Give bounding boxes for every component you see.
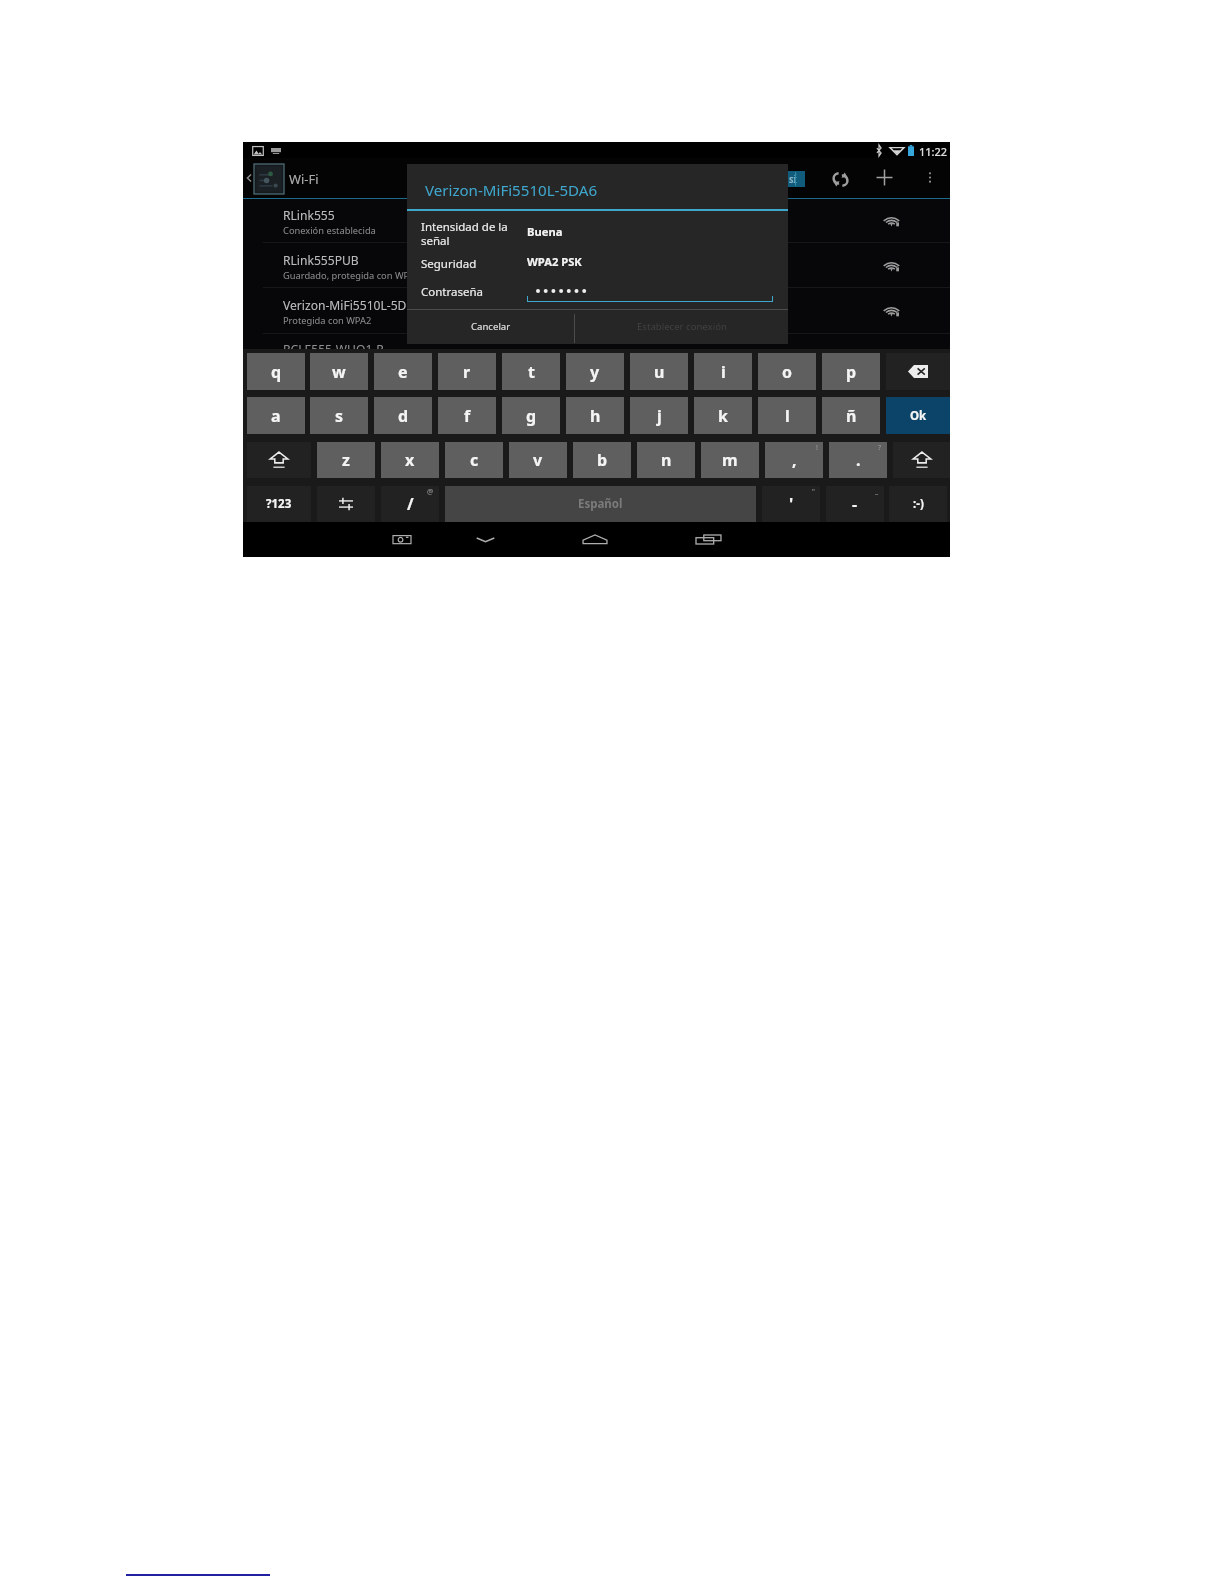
button[interactable]: x [381,442,439,478]
staticText: Verizon-MiFi5510L-5DA6 [425,180,598,201]
staticText: RCLE555-WHO1-R [283,341,384,357]
button[interactable]: p [822,353,880,390]
button[interactable]: Verizon-MiFi5510L-5D [243,297,950,341]
staticText: n [661,449,672,471]
staticText: Intensidad de la [421,219,508,235]
button[interactable]: Back [243,170,256,186]
button[interactable]: y [566,353,624,390]
button[interactable]: Ok [886,397,950,434]
button[interactable]: Español [445,486,756,522]
button[interactable]: f [438,397,496,434]
button[interactable]: t [502,353,560,390]
button[interactable]: z [317,442,375,478]
button[interactable]: i [694,353,752,390]
button[interactable]: settings [317,486,375,522]
button[interactable]: Screenshot [391,531,413,548]
button[interactable]: g [502,397,560,434]
staticText: j [657,405,662,427]
button[interactable]: Add network [874,167,895,188]
button[interactable]: v [509,442,567,478]
button[interactable]: h [566,397,624,434]
staticText: . [856,449,861,471]
staticText: g [526,405,537,427]
button[interactable]: w [310,353,368,390]
button[interactable]: Home [581,531,609,548]
staticText: f [464,405,471,427]
staticText: r [463,361,471,383]
staticText: e [398,361,408,383]
button[interactable]: n [637,442,695,478]
button[interactable]: m [701,442,759,478]
button[interactable]: j [630,397,688,434]
staticText: Español [578,496,623,512]
staticText: o [782,361,793,383]
staticText: y [590,361,600,383]
button[interactable]: shift [893,442,950,478]
button[interactable]: / [381,486,439,522]
staticText: SÍ [789,174,797,185]
staticText: Guardado, protegida con WPA [283,269,415,282]
staticText: ? [878,443,882,453]
staticText: h [590,405,601,427]
button[interactable]: shift [247,442,311,478]
button[interactable]: Settings app icon [254,164,284,194]
staticText: Seguridad [421,256,477,272]
staticText: Cancelar [471,320,511,333]
staticText: ?123 [266,496,292,512]
button[interactable]: e [374,353,432,390]
button[interactable]: a [247,397,305,434]
staticText: q [271,361,282,383]
staticText: Establecer conexión [637,320,727,333]
staticText: ' [789,493,794,515]
staticText: , [792,449,797,471]
button[interactable]: Scan [833,172,848,187]
staticText: u [654,361,665,383]
button[interactable]: o [758,353,816,390]
staticText: Contraseña [421,284,484,300]
staticText: Wi-Fi [289,170,319,188]
staticText: v [533,449,543,471]
staticText: c [470,449,479,471]
button[interactable]: RLink555 [243,207,950,251]
button[interactable]: r [438,353,496,390]
button[interactable]: , [765,442,823,478]
button[interactable]: del [886,353,950,390]
staticText: _ [875,487,879,497]
button[interactable]: c [445,442,503,478]
button[interactable]: q [247,353,305,390]
button[interactable]: Wi-Fi toggle [787,171,805,187]
button[interactable]: :-) [889,486,947,522]
button[interactable]: Establecer conexión [575,310,788,343]
staticText: z [342,449,350,471]
staticText: k [718,405,728,427]
button[interactable]: ?123 [247,486,311,522]
staticText: x [405,449,415,471]
button[interactable]: k [694,397,752,434]
staticText: / [407,493,414,515]
button[interactable]: ' [762,486,820,522]
staticText: l [785,405,790,427]
staticText: m [722,449,738,471]
staticText: @ [427,487,434,497]
button[interactable]: ñ [822,397,880,434]
button[interactable]: d [374,397,432,434]
button[interactable]: Recent apps [695,531,723,548]
button[interactable]: . [829,442,887,478]
button[interactable]: Cancelar [407,310,574,343]
button[interactable]: s [310,397,368,434]
button[interactable]: More options [922,167,938,188]
button[interactable]: RLink555PUB [243,252,950,296]
button[interactable]: Hide keyboard [472,531,499,548]
staticText: 11:22 [919,144,948,159]
button[interactable]: - [826,486,884,522]
staticText: b [597,449,608,471]
button[interactable]: b [573,442,631,478]
button[interactable]: l [758,397,816,434]
staticText: RLink555PUB [283,252,359,268]
staticText: :-) [913,496,924,512]
staticText: WPA2 PSK [527,254,582,269]
staticText: t [528,361,535,383]
button[interactable]: u [630,353,688,390]
staticText: p [846,361,857,383]
